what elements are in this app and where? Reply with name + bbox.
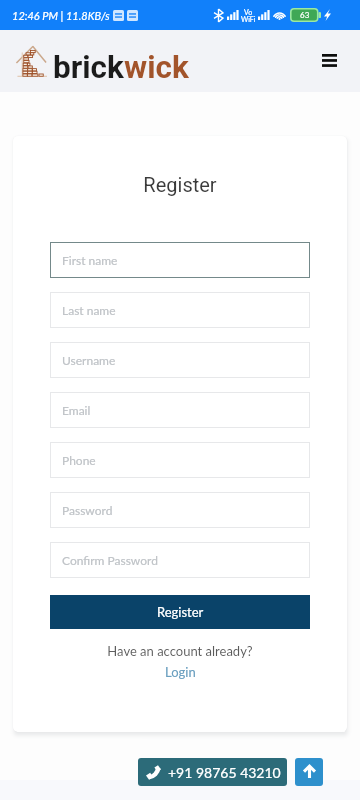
staticText: Password	[62, 503, 113, 517]
button[interactable]: Phone	[50, 442, 310, 478]
staticText: Username	[62, 353, 116, 367]
staticText: brick	[53, 49, 124, 86]
button[interactable]: Email	[50, 392, 310, 428]
staticText: Last name	[62, 303, 116, 317]
button[interactable]: First name	[50, 242, 310, 278]
button[interactable]: Confirm Password	[50, 542, 310, 578]
staticText: Vo	[244, 8, 253, 16]
button[interactable]: Password	[50, 492, 310, 528]
staticText: Phone	[62, 453, 96, 467]
staticText: First name	[62, 253, 118, 267]
staticText: Email	[62, 403, 91, 417]
staticText: Register	[157, 604, 204, 620]
staticText: 12:46 PM | 11.8KB/s	[12, 9, 110, 22]
staticText: WiFi	[241, 15, 256, 23]
button[interactable]: Scroll to top	[295, 758, 323, 786]
button[interactable]: Menu	[313, 44, 345, 76]
button[interactable]: +91 98765 43210	[138, 758, 287, 786]
button[interactable]: Username	[50, 342, 310, 378]
button[interactable]: Last name	[50, 292, 310, 328]
staticText: Register	[13, 173, 347, 196]
staticText: Confirm Password	[62, 553, 158, 567]
staticText: wick	[124, 49, 189, 86]
button[interactable]: Register	[50, 595, 310, 629]
staticText: +91 98765 43210	[168, 764, 281, 781]
staticText: Have an account already?	[13, 643, 347, 659]
button[interactable]: Login	[165, 664, 196, 680]
staticText: 63	[300, 10, 310, 20]
